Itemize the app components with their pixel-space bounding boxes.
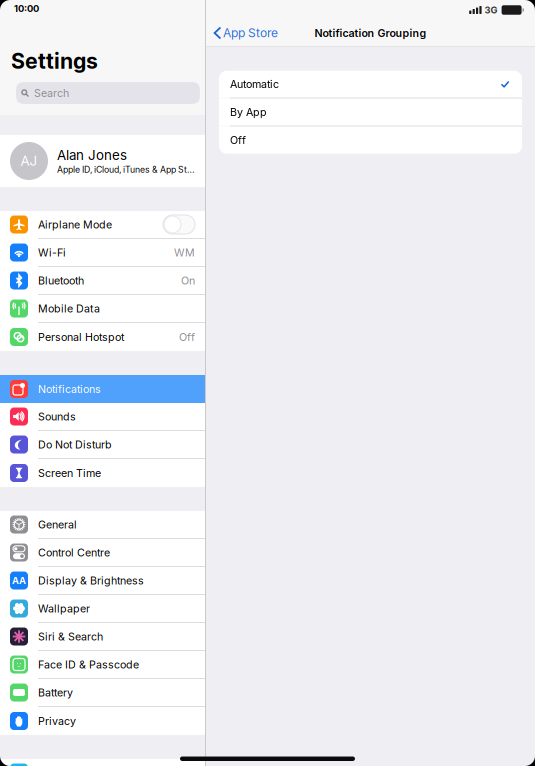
staticText: AA	[12, 575, 26, 586]
button[interactable]: Wi-Fi	[0, 239, 205, 266]
button[interactable]: App Store	[206, 20, 287, 46]
button[interactable]: Face ID & Passcode	[0, 651, 205, 678]
staticText: By App	[230, 106, 267, 119]
staticText: Notification Grouping	[314, 26, 426, 39]
staticText: Automatic	[230, 78, 279, 91]
staticText: Siri & Search	[38, 630, 103, 643]
button[interactable]: Wallpaper	[0, 595, 205, 622]
button[interactable]: Sounds	[0, 403, 205, 430]
staticText: Off	[179, 330, 195, 343]
staticText: Battery	[38, 686, 73, 699]
button[interactable]: AA	[0, 567, 205, 594]
staticText: App Store	[223, 26, 278, 40]
button[interactable]: Control Centre	[0, 539, 205, 566]
button[interactable]: Automatic	[219, 71, 522, 98]
staticText: Alan Jones	[57, 147, 127, 163]
button[interactable]: AJ	[0, 135, 205, 187]
staticText: Wi-Fi	[38, 246, 66, 259]
button[interactable]: Do Not Disturb	[0, 431, 205, 458]
button[interactable]: Bluetooth	[0, 267, 205, 294]
staticText: Screen Time	[38, 466, 101, 479]
staticText: 3G	[485, 4, 498, 16]
button[interactable]: General	[0, 511, 205, 538]
staticText: Face ID & Passcode	[38, 658, 139, 671]
staticText: WM	[174, 246, 195, 259]
staticText: Privacy	[38, 714, 76, 727]
button[interactable]: Battery	[0, 679, 205, 706]
button[interactable]: Mobile Data	[0, 295, 205, 322]
staticText: General	[38, 518, 77, 531]
staticText: Search	[34, 86, 69, 99]
staticText: Off	[230, 134, 246, 147]
button[interactable]: Siri & Search	[0, 623, 205, 650]
staticText: Control Centre	[38, 546, 110, 559]
staticText: AJ	[20, 153, 37, 169]
staticText: Personal Hotspot	[38, 330, 124, 343]
button[interactable]: Notifications	[0, 375, 205, 403]
staticText: Notifications	[38, 382, 101, 395]
staticText: Do Not Disturb	[38, 438, 112, 451]
button[interactable]: Off	[219, 127, 522, 154]
staticText: Sounds	[38, 410, 76, 423]
staticText: Bluetooth	[38, 274, 84, 287]
staticText: 10:00	[14, 3, 39, 14]
button[interactable]: Airplane Mode	[0, 211, 205, 238]
staticText: Display & Brightness	[38, 574, 144, 587]
staticText: Airplane Mode	[38, 218, 112, 231]
button[interactable]: Personal Hotspot	[0, 323, 205, 351]
button[interactable]: A	[0, 759, 205, 766]
staticText: Apple ID, iCloud, iTunes & App St…	[57, 164, 194, 175]
staticText: Settings	[11, 48, 98, 74]
button[interactable]: Screen Time	[0, 459, 205, 487]
button[interactable]: Privacy	[0, 707, 205, 735]
staticText: On	[181, 274, 195, 287]
staticText: Wallpaper	[38, 602, 90, 615]
button[interactable]: By App	[219, 99, 522, 126]
staticText: Mobile Data	[38, 302, 100, 315]
